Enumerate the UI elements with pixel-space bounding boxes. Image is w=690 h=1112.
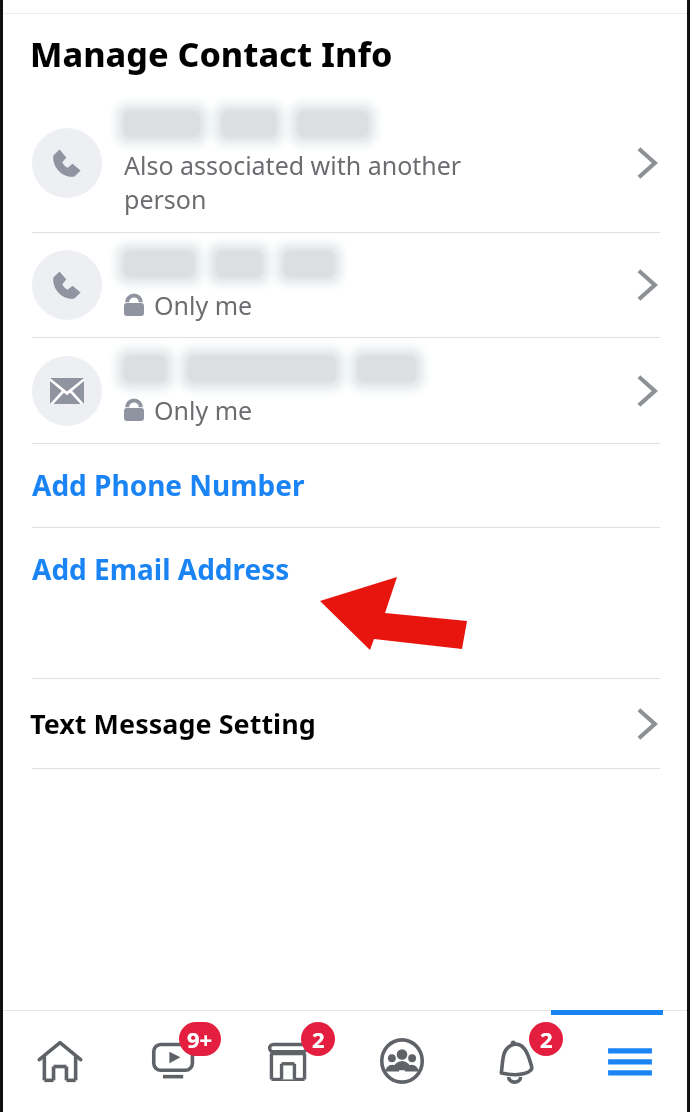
staticText: Add Phone Number (32, 466, 305, 504)
button[interactable]: Notifications (459, 1010, 573, 1112)
staticText: 9+ (187, 1024, 213, 1054)
staticText: Also associated with another (124, 148, 462, 182)
button[interactable]: Only me (3, 233, 687, 337)
button[interactable]: Add Email Address (3, 528, 687, 678)
button[interactable]: Groups (345, 1010, 459, 1112)
button[interactable]: Video (117, 1010, 231, 1112)
button[interactable]: Text Message Setting (3, 679, 687, 768)
staticText: Text Message Setting (30, 705, 316, 742)
button[interactable]: Also associated with another (3, 93, 687, 232)
staticText: Add Email Address (32, 550, 290, 588)
staticText: Only me (154, 288, 253, 322)
staticText: person (124, 182, 207, 216)
staticText: 2 (540, 1024, 553, 1054)
button[interactable]: Home (3, 1010, 117, 1112)
button[interactable]: Marketplace (231, 1010, 345, 1112)
button[interactable]: Only me (3, 338, 687, 443)
staticText: 2 (312, 1024, 325, 1054)
staticText: Manage Contact Info (30, 31, 393, 77)
staticText: Only me (154, 393, 253, 427)
button[interactable]: Add Phone Number (3, 444, 687, 527)
button[interactable]: Menu (573, 1010, 687, 1112)
